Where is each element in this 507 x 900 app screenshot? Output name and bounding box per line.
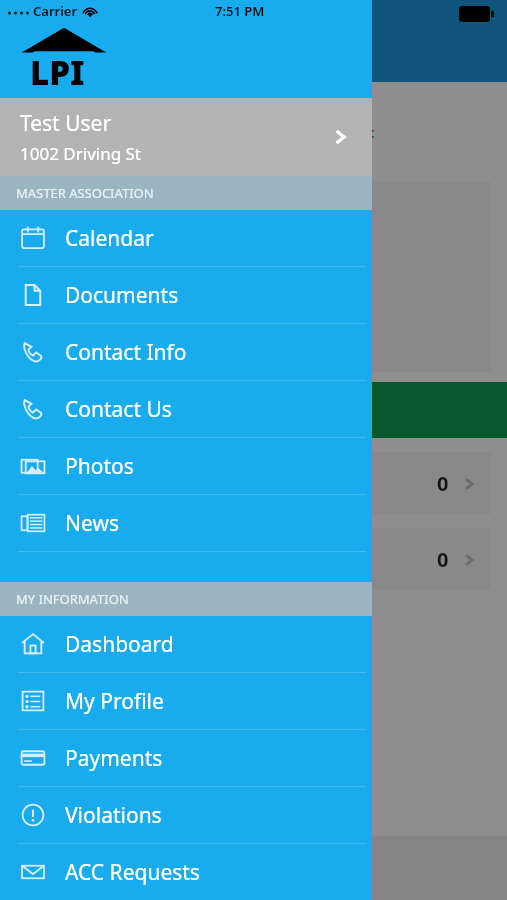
staticText: Violations [65, 801, 162, 830]
staticText: 0 [437, 470, 449, 497]
staticText: News [65, 509, 119, 538]
staticText: Dashboard [65, 630, 174, 659]
staticText: Add Account [280, 122, 375, 142]
button[interactable]: My Profile [0, 673, 372, 730]
button[interactable]: Test User [0, 98, 372, 176]
staticText: MASTER ASSOCIATION [16, 184, 154, 202]
staticText: Account Info [200, 205, 290, 225]
staticText: 1002 Driving St [20, 142, 142, 165]
staticText: 7:51 PM [215, 2, 265, 20]
staticText: Documents [65, 281, 179, 310]
button[interactable]: Add Account [0, 82, 507, 182]
button[interactable]: Calendar [0, 210, 372, 267]
button[interactable]: 0 [16, 452, 491, 514]
staticText: 0 [437, 546, 449, 573]
button[interactable]: ACC Requests [0, 844, 372, 900]
button[interactable]: 0 [16, 528, 491, 590]
staticText: Calendar [65, 224, 154, 253]
staticText: Photos [65, 452, 134, 481]
staticText: Contact Us [65, 395, 172, 424]
button[interactable]: Photos [0, 438, 372, 495]
button[interactable]: Contact Info [0, 324, 372, 381]
staticText: Contact Info [65, 338, 187, 367]
button[interactable]: Dashboard [0, 616, 372, 673]
staticText: My Profile [65, 687, 164, 716]
staticText: MY INFORMATION [16, 590, 129, 608]
button[interactable]: Violations [0, 787, 372, 844]
button[interactable]: Account Info [166, 196, 346, 234]
staticText: ACC Requests [65, 858, 200, 887]
button[interactable]: Payments [0, 730, 372, 787]
button[interactable]: Documents [285, 843, 358, 893]
button[interactable]: Documents [0, 267, 372, 324]
staticText: Carrier [33, 2, 78, 20]
button[interactable]: Contact Us [0, 381, 372, 438]
staticText: LPI [30, 50, 85, 95]
button[interactable]: News [0, 495, 372, 552]
staticText: Payments [65, 744, 163, 773]
staticText: Test User [20, 109, 112, 138]
